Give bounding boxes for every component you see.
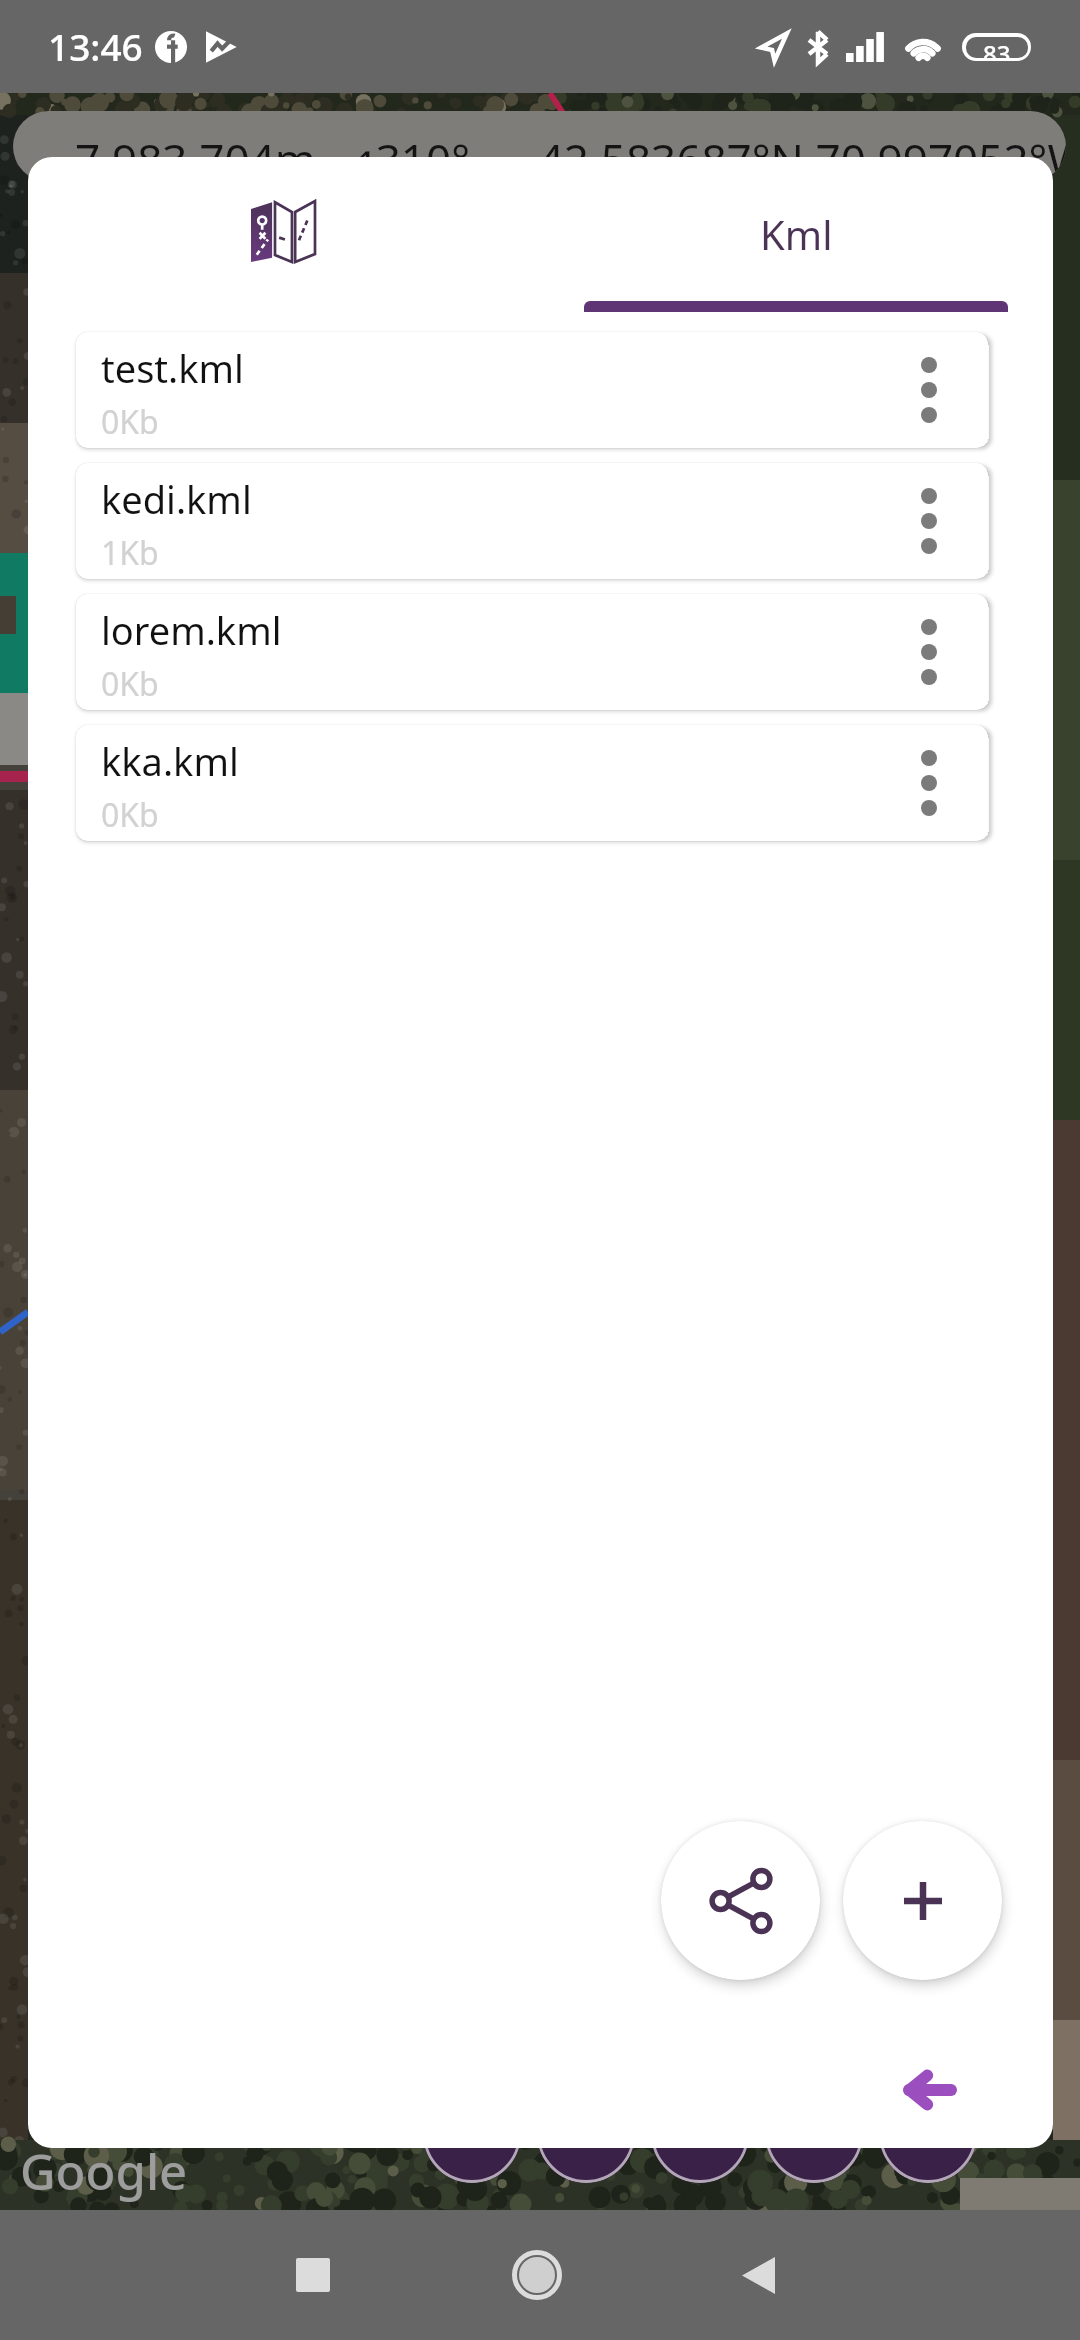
staticText: Google <box>20 2138 188 2205</box>
button[interactable]: Map tool <box>651 2085 749 2183</box>
button[interactable]: Map tool <box>765 2085 863 2183</box>
button[interactable]: Back <box>882 2042 978 2138</box>
button[interactable]: Add <box>843 1821 1002 1980</box>
button[interactable]: Kml <box>540 157 1053 312</box>
staticText: kedi.kml <box>101 473 252 525</box>
button[interactable]: Home <box>492 2230 582 2320</box>
button[interactable]: Map tool <box>879 2085 977 2183</box>
staticText: Kml <box>760 207 833 261</box>
staticText: test.kml <box>101 342 244 394</box>
button[interactable]: lorem.kml <box>76 594 988 710</box>
staticText: 13:46 <box>48 21 143 71</box>
button[interactable]: Map tool <box>537 2085 635 2183</box>
button[interactable]: Map tool <box>423 2085 521 2183</box>
button[interactable]: More options <box>870 594 988 710</box>
staticText: 0Kb <box>101 793 159 837</box>
button[interactable]: More options <box>870 463 988 579</box>
button[interactable]: test.kml <box>76 332 988 448</box>
button[interactable]: Map <box>28 157 540 312</box>
button[interactable]: Recents <box>268 2230 358 2320</box>
staticText: 7.983.704m ⊿310° 42.583687°N 70.997052°W <box>75 129 1066 182</box>
button[interactable]: More options <box>870 725 988 841</box>
staticText: 0Kb <box>101 662 159 706</box>
staticText: 83 <box>983 37 1011 58</box>
staticText: kka.kml <box>101 735 239 787</box>
staticText: 1Kb <box>101 531 159 575</box>
button[interactable]: kedi.kml <box>76 463 988 579</box>
button[interactable]: More options <box>870 332 988 448</box>
staticText: lorem.kml <box>101 604 282 656</box>
button[interactable]: Share <box>661 1821 820 1980</box>
button[interactable]: Back <box>713 2230 803 2320</box>
button[interactable]: kka.kml <box>76 725 988 841</box>
staticText: 0Kb <box>101 400 159 444</box>
